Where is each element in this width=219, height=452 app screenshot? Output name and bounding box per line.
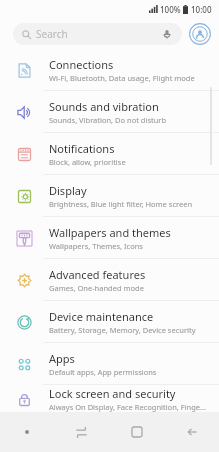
staticText: Device maintenance <box>49 309 154 324</box>
staticText: Battery, Storage, Memory, Device securit… <box>49 325 196 335</box>
button[interactable]: Display <box>0 175 219 216</box>
staticText: Sounds, Vibration, Do not disturb <box>49 115 167 125</box>
button[interactable]: Lock screen and security <box>0 385 219 412</box>
staticText: Search <box>36 27 68 41</box>
staticText: Games, One-handed mode <box>49 283 144 293</box>
staticText: Block, allow, prioritise <box>49 157 126 167</box>
button[interactable]: Account <box>189 23 211 45</box>
staticText: Advanced features <box>49 267 146 282</box>
button[interactable]: Menu <box>0 412 54 452</box>
button[interactable]: Sounds and vibration <box>0 91 219 132</box>
button[interactable]: Apps <box>0 343 219 384</box>
staticText: Always On Display, Face Recognition, Fin… <box>49 402 206 412</box>
staticText: Wallpapers and themes <box>49 225 171 240</box>
button[interactable]: Wallpapers and themes <box>0 217 219 258</box>
button[interactable]: Recents <box>54 412 109 452</box>
staticText: 100% <box>160 4 181 15</box>
staticText: Wi-Fi, Bluetooth, Data usage, Flight mod… <box>49 73 195 83</box>
button[interactable]: Home <box>109 412 164 452</box>
staticText: Notifications <box>49 141 115 156</box>
staticText: Lock screen and security <box>49 386 176 401</box>
staticText: Display <box>49 183 87 198</box>
button[interactable]: Back <box>164 412 219 452</box>
button[interactable]: Connections <box>0 49 219 90</box>
staticText: Sounds and vibration <box>49 99 159 114</box>
button[interactable]: Notifications <box>0 133 219 174</box>
button[interactable]: Device maintenance <box>0 301 219 342</box>
staticText: 10:00 <box>191 4 212 15</box>
staticText: Apps <box>49 351 75 366</box>
staticText: Wallpapers, Themes, Icons <box>49 241 143 251</box>
staticText: Default apps, App permissions <box>49 367 157 377</box>
staticText: Brightness, Blue light filter, Home scre… <box>49 199 193 209</box>
button[interactable]: Voice search <box>161 28 173 40</box>
button[interactable]: Advanced features <box>0 259 219 300</box>
staticText: Connections <box>49 57 114 72</box>
button[interactable]: Search <box>13 23 182 45</box>
